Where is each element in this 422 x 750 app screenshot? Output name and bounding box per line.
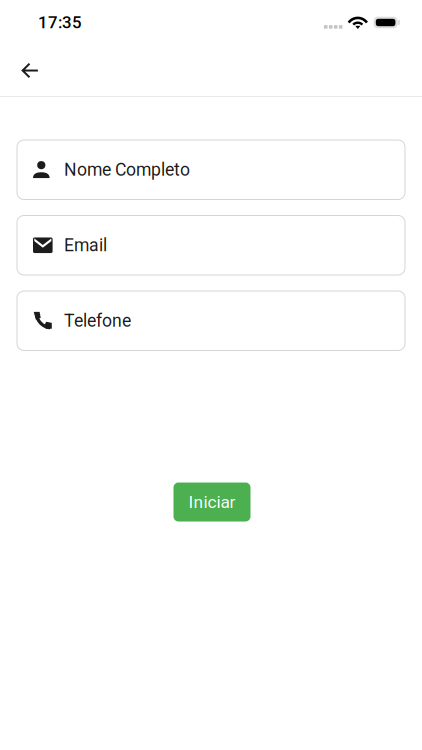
button[interactable]: Iniciar [173,482,250,521]
button[interactable]: Email [17,215,405,275]
button[interactable]: Back [10,50,50,90]
staticText: Nome Completo [64,159,190,180]
button[interactable]: Nome Completo [17,140,405,199]
staticText: Email [64,235,107,255]
staticText: Telefone [64,310,131,331]
staticText: 17:35 [38,13,82,32]
button[interactable]: Telefone [17,291,405,350]
staticText: Iniciar [188,492,235,512]
